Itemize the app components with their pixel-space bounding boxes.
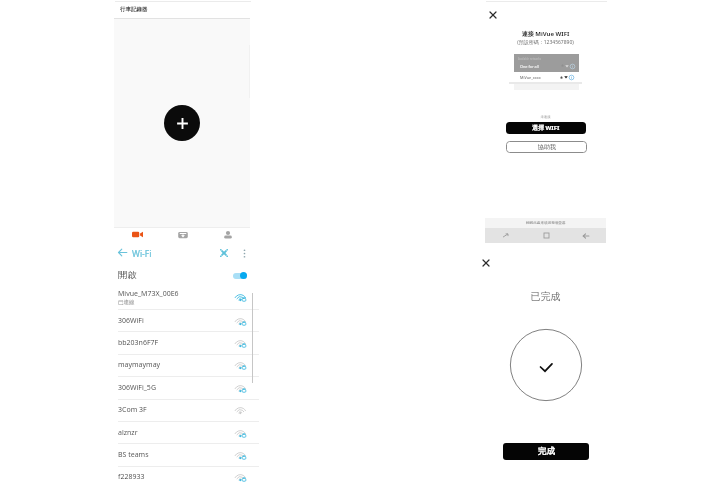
button[interactable]: f228933 xyxy=(113,466,254,485)
button[interactable]: 完成 xyxy=(503,443,589,460)
staticText: 完成 xyxy=(538,446,555,457)
staticText: f228933 xyxy=(118,472,145,482)
button[interactable]: Close xyxy=(486,8,500,22)
staticText: Wi-Fi xyxy=(132,248,152,260)
staticText: 輕觸此處來填滿整個螢幕 xyxy=(526,221,566,226)
staticText: BS teams xyxy=(118,450,149,460)
button[interactable]: 306WiFi_5G xyxy=(113,377,254,399)
button[interactable]: More options xyxy=(237,246,251,260)
staticText: bb203n6F7F xyxy=(118,338,159,348)
staticText: Mivue_M73X_00E6 xyxy=(118,289,179,299)
button[interactable]: BS teams xyxy=(113,444,254,466)
button[interactable]: bb203n6F7F xyxy=(113,332,254,354)
button[interactable]: Home xyxy=(526,228,566,243)
staticText: One for all xyxy=(520,64,539,69)
staticText: 未連接 xyxy=(485,115,606,119)
button[interactable]: Record xyxy=(114,228,160,241)
staticText: 連接 MiVue WIFI xyxy=(485,30,606,38)
staticText: 行車記錄器 xyxy=(120,6,148,13)
staticText: MiVue_xxxx xyxy=(520,75,541,80)
button[interactable]: 306WiFi xyxy=(113,310,254,332)
staticText: 已連線 xyxy=(118,299,135,306)
staticText: 306WiFi_5G xyxy=(118,383,156,393)
staticText: 306WiFi xyxy=(118,316,144,326)
button[interactable]: Profile xyxy=(205,228,250,241)
button[interactable]: 協助我 xyxy=(506,141,587,153)
button[interactable]: maymaymay xyxy=(113,354,254,376)
staticText: 已完成 xyxy=(485,290,606,303)
staticText: 開啟 xyxy=(118,269,137,281)
button[interactable]: alznzr xyxy=(113,422,254,444)
staticText: alznzr xyxy=(118,428,138,438)
button[interactable]: 選擇 WIFI xyxy=(506,122,586,134)
button[interactable]: Close xyxy=(479,256,493,270)
staticText: 選擇 WIFI xyxy=(532,124,560,132)
staticText: 協助我 xyxy=(538,143,556,151)
button[interactable]: 3Com 3F xyxy=(113,399,254,421)
button[interactable]: 開啟 xyxy=(113,265,254,285)
button[interactable]: Files xyxy=(160,228,205,241)
staticText: maymaymay xyxy=(118,360,161,370)
button[interactable]: Back xyxy=(566,228,606,243)
staticText: (預設密碼：1234567890) xyxy=(485,39,606,46)
button[interactable]: Scan QR code xyxy=(217,246,231,260)
button[interactable]: Recent apps xyxy=(485,228,526,243)
button[interactable]: Add device xyxy=(164,105,200,141)
staticText: 3Com 3F xyxy=(118,405,147,415)
button[interactable]: Mivue_M73X_00E6 xyxy=(113,285,254,309)
staticText: Available networks xyxy=(518,57,541,61)
button[interactable]: Back xyxy=(115,245,129,259)
